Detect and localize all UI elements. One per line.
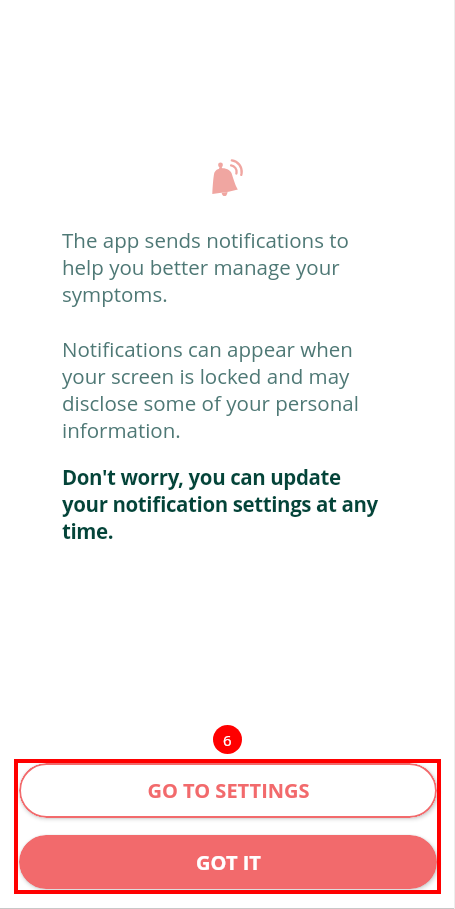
other: Notifications — [204, 158, 244, 198]
button[interactable]: GO TO SETTINGS — [19, 763, 437, 818]
button[interactable]: GOT IT — [19, 835, 437, 889]
staticText: Don't worry, you can update your notific… — [62, 463, 380, 545]
staticText: 6 — [223, 730, 232, 750]
staticText: GOT IT — [196, 849, 261, 876]
staticText: GO TO SETTINGS — [147, 777, 310, 804]
staticText: The app sends notifications to help you … — [62, 226, 380, 308]
staticText: Notifications can appear when your scree… — [62, 335, 380, 444]
